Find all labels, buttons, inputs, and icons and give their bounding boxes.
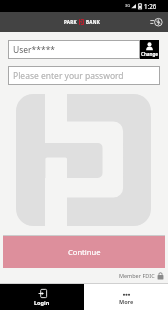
button[interactable]: Please enter your password bbox=[8, 66, 160, 85]
button[interactable]: Continue bbox=[3, 236, 165, 268]
button[interactable]: More bbox=[84, 284, 168, 310]
button[interactable]: User***** bbox=[8, 40, 140, 59]
staticText: 3G bbox=[125, 3, 131, 8]
button[interactable]: Login bbox=[0, 284, 84, 310]
staticText: PARK bbox=[64, 19, 77, 25]
staticText: BANK bbox=[86, 19, 101, 25]
staticText: Member FDIC bbox=[119, 272, 155, 279]
staticText: 1:26 bbox=[144, 2, 157, 10]
staticText: Login bbox=[34, 299, 50, 306]
staticText: Change bbox=[141, 51, 158, 57]
staticText: More bbox=[119, 298, 134, 305]
staticText: Please enter your password bbox=[13, 70, 124, 82]
staticText: Continue bbox=[68, 247, 101, 257]
button[interactable]: Change bbox=[140, 40, 159, 59]
staticText: User***** bbox=[13, 44, 56, 56]
button[interactable]: Rates bbox=[146, 13, 164, 31]
